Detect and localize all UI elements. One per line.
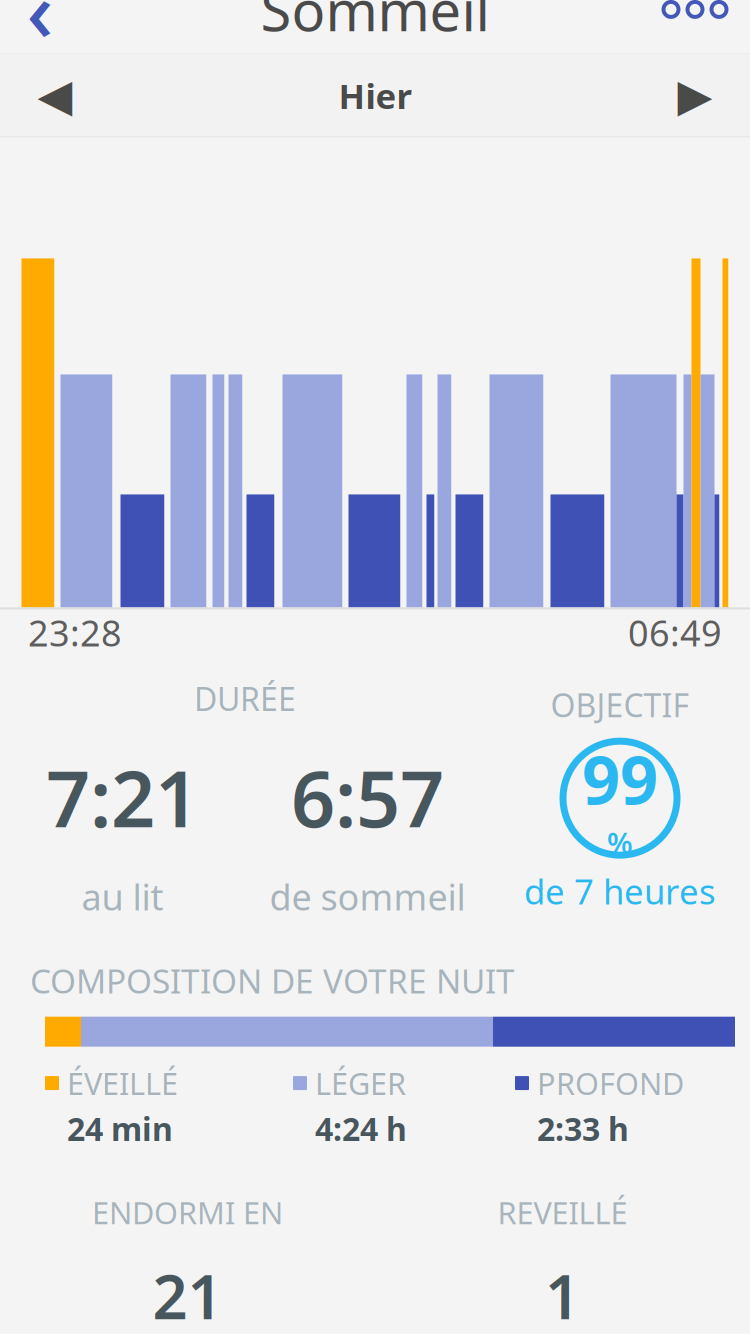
- staticText: 1: [545, 1255, 580, 1334]
- staticText: Sommeil: [260, 0, 489, 47]
- staticText: LÉGER: [315, 1063, 406, 1103]
- staticText: 99: [582, 734, 658, 823]
- staticText: %: [607, 823, 633, 862]
- staticText: 06:49: [628, 608, 722, 656]
- staticText: ENDORMI EN: [92, 1192, 283, 1233]
- button[interactable]: Previous day: [0, 54, 110, 136]
- staticText: 4:24 h: [315, 1107, 407, 1150]
- staticText: 24 min: [67, 1107, 173, 1150]
- button[interactable]: More options: [640, 0, 750, 53]
- staticText: PROFOND: [537, 1063, 684, 1103]
- staticText: 2:33 h: [537, 1107, 629, 1150]
- staticText: au lit: [81, 873, 163, 920]
- staticText: 7:21: [46, 746, 199, 849]
- staticText: ◀: [37, 70, 72, 121]
- button[interactable]: Next day: [640, 54, 750, 136]
- staticText: de sommeil: [269, 873, 465, 920]
- staticText: REVEILLÉ: [497, 1192, 627, 1233]
- staticText: DURÉE: [194, 677, 296, 720]
- staticText: ▶: [677, 70, 712, 121]
- staticText: 23:28: [28, 608, 122, 656]
- staticText: de 7 heures: [524, 868, 716, 914]
- staticText: Hier: [338, 72, 411, 118]
- staticText: COMPOSITION DE VOTRE NUIT: [30, 958, 515, 1003]
- staticText: ÉVEILLÉ: [67, 1063, 178, 1103]
- staticText: 21: [152, 1255, 222, 1334]
- button[interactable]: Back: [0, 0, 80, 53]
- staticText: ‹: [26, 0, 53, 64]
- staticText: 6:57: [291, 746, 444, 849]
- staticText: OBJECTIF: [550, 684, 689, 726]
